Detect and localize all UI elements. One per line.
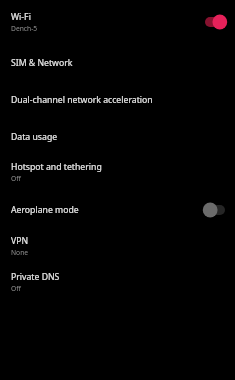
staticText: Off [11, 174, 21, 183]
staticText: Dual-channel network acceleration [11, 94, 153, 106]
staticText: Data usage [11, 131, 58, 143]
button[interactable]: Aeroplane mode [0, 191, 235, 228]
button[interactable]: SIM & Network [0, 44, 235, 81]
button[interactable]: Wi-Fi, on [200, 11, 230, 33]
button[interactable]: Dual-channel network acceleration [0, 81, 235, 118]
button[interactable]: Data usage [0, 118, 235, 155]
staticText: Off [11, 284, 21, 293]
staticText: SIM & Network [11, 57, 73, 69]
button[interactable]: Wi-Fi [0, 3, 235, 40]
staticText: Dench-5 [11, 24, 38, 33]
button[interactable]: Hotspot and tethering [0, 153, 235, 190]
staticText: Private DNS [11, 271, 60, 283]
staticText: None [11, 248, 29, 257]
staticText: Hotspot and tethering [11, 161, 102, 173]
staticText: Aeroplane mode [11, 204, 79, 216]
button[interactable]: Private DNS [0, 263, 235, 300]
staticText: Wi-Fi [11, 11, 31, 23]
staticText: VPN [11, 235, 29, 247]
button[interactable]: VPN [0, 227, 235, 264]
button[interactable]: Aeroplane mode, off [200, 199, 230, 221]
